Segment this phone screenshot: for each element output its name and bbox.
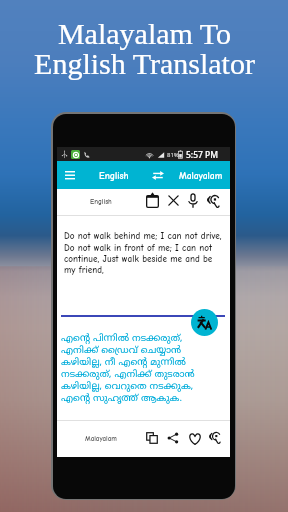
- button[interactable]: Share: [164, 429, 182, 447]
- button[interactable]: Speak text: [203, 191, 223, 211]
- staticText: English: [90, 198, 112, 206]
- staticText: എന്റെ സുഹൃത്ത് ആകുക.: [61, 393, 183, 405]
- button[interactable]: Translate: [191, 309, 218, 336]
- button[interactable]: Open navigation menu: [59, 161, 81, 189]
- staticText: കഴിയില്ല, നീ എന്റെ മുന്നിൽ: [61, 357, 186, 369]
- staticText: 81%: [167, 151, 179, 159]
- button[interactable]: Speak translation: [205, 428, 224, 447]
- button[interactable]: Copy translation: [143, 429, 161, 447]
- button[interactable]: Clear text: [165, 192, 182, 209]
- button[interactable]: Malayalam: [173, 161, 229, 189]
- button[interactable]: English: [90, 161, 138, 189]
- button[interactable]: Voice input: [185, 190, 201, 211]
- staticText: English: [99, 170, 129, 181]
- staticText: Malayalam: [179, 170, 223, 181]
- staticText: എന്റെ പിന്നിൽ നടക്കരുത്,: [61, 333, 183, 345]
- staticText: എനിക്ക് ഡ്രൈവ് ചെയ്യാൻ: [61, 345, 182, 357]
- button[interactable]: Add to favourites: [185, 430, 205, 448]
- staticText: Malayalam: [85, 435, 117, 443]
- staticText: 5:57 PM: [186, 149, 219, 161]
- button[interactable]: Swap languages: [148, 161, 167, 189]
- staticText: നടക്കരുത്, എനിക്ക് തുടരാൻ: [61, 369, 195, 381]
- staticText: Malayalam To English Translator: [34, 17, 255, 80]
- button[interactable]: Paste from clipboard: [143, 190, 162, 211]
- staticText: കഴിയില്ല, വെറുതെ നടക്കുക,: [61, 381, 194, 393]
- staticText: Do not walk behind me; I can not drive, …: [64, 231, 226, 275]
